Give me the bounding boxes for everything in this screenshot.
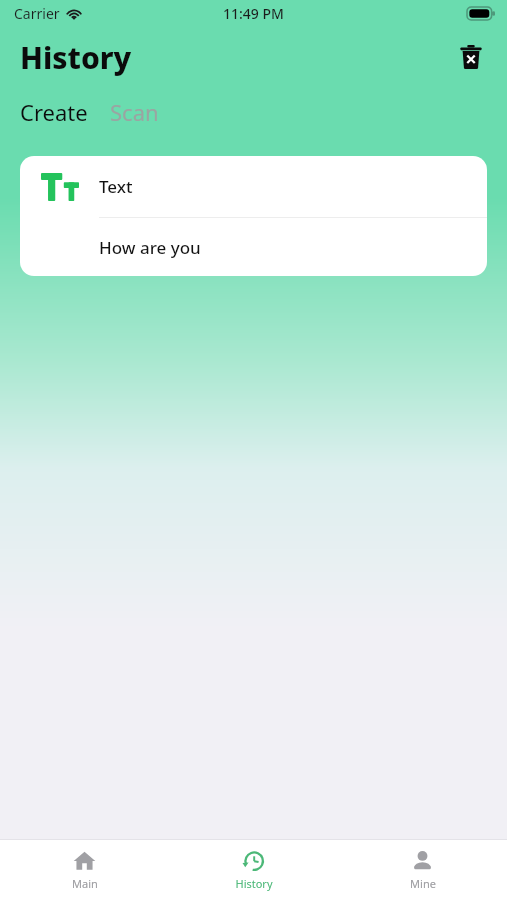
staticText: Text xyxy=(99,175,133,198)
button[interactable]: Mine xyxy=(338,840,507,891)
button[interactable]: Create xyxy=(20,97,88,127)
button[interactable]: Text xyxy=(20,156,487,276)
staticText: Main xyxy=(72,876,98,891)
staticText: History xyxy=(235,876,273,891)
staticText: Carrier xyxy=(14,4,60,23)
staticText: 11:49 PM xyxy=(223,4,284,23)
button[interactable]: Scan xyxy=(110,97,159,127)
button[interactable]: Main xyxy=(0,840,169,891)
button[interactable]: History xyxy=(169,840,338,891)
staticText: Scan xyxy=(110,97,159,127)
staticText: Mine xyxy=(410,876,436,891)
staticText: Create xyxy=(20,97,88,127)
button[interactable]: Clear history xyxy=(451,37,491,77)
staticText: History xyxy=(20,37,132,78)
staticText: How are you xyxy=(99,236,201,259)
